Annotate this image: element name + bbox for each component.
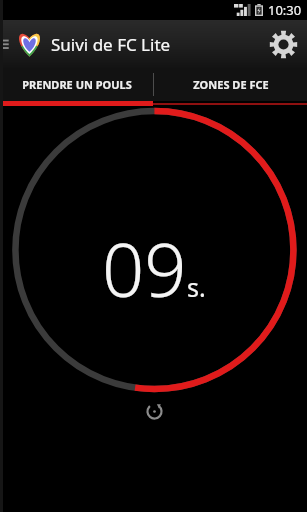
- staticText: 10:30: [268, 1, 302, 19]
- staticText: s.: [187, 270, 206, 304]
- button[interactable]: PRENDRE UN POULS: [0, 68, 153, 101]
- button[interactable]: Reset timer: [137, 394, 171, 428]
- button[interactable]: Navigation drawer: [3, 33, 14, 55]
- staticText: PRENDRE UN POULS: [22, 77, 132, 92]
- staticText: Suivi de FC Lite: [51, 33, 171, 56]
- staticText: ZONES DE FCE: [193, 77, 269, 92]
- button[interactable]: ZONES DE FCE: [154, 68, 307, 101]
- button[interactable]: Settings: [259, 20, 307, 68]
- staticText: 09: [102, 218, 187, 319]
